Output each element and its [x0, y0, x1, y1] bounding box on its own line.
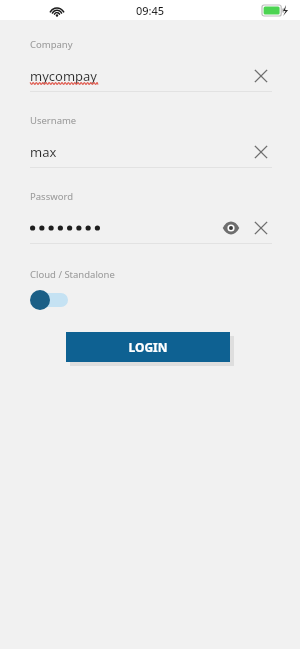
staticText: 09:45 — [136, 3, 165, 18]
button[interactable]: Company — [0, 38, 300, 92]
staticText: LOGIN — [128, 339, 168, 355]
staticText: mycompay — [30, 67, 97, 85]
staticText: Company — [30, 38, 73, 51]
button[interactable]: Clear — [250, 65, 272, 87]
button[interactable]: Username — [0, 114, 300, 168]
button[interactable]: LOGIN — [66, 332, 230, 362]
button[interactable] — [30, 289, 70, 311]
staticText: max — [30, 143, 57, 161]
button[interactable]: Password — [0, 190, 300, 244]
button[interactable]: Clear — [250, 141, 272, 163]
staticText: Username — [30, 114, 77, 127]
staticText: Cloud / Standalone — [30, 268, 115, 281]
staticText: Password — [30, 190, 73, 203]
button[interactable]: Show password — [220, 217, 242, 239]
button[interactable]: Clear — [250, 217, 272, 239]
